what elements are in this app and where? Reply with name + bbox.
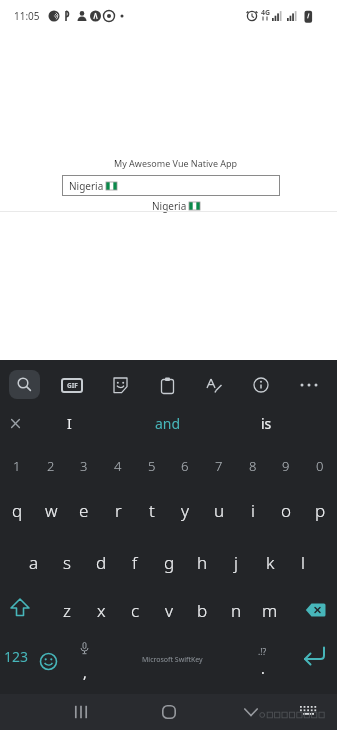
button[interactable]: e: [67, 487, 101, 533]
button[interactable]: p: [303, 487, 337, 533]
button[interactable]: I: [29, 404, 109, 442]
staticText: t: [149, 499, 155, 522]
staticText: a: [29, 551, 39, 574]
staticText: r: [115, 499, 122, 522]
staticText: e: [79, 499, 89, 522]
button[interactable]: 7: [202, 446, 236, 486]
button[interactable]: m: [253, 587, 287, 633]
staticText: 4G: [261, 8, 271, 18]
button[interactable]: x: [84, 587, 118, 633]
button[interactable]: [59, 694, 103, 730]
staticText: n: [231, 599, 242, 622]
button[interactable]: l: [286, 539, 320, 585]
staticText: k: [266, 551, 275, 574]
button[interactable]: q: [0, 487, 34, 533]
button[interactable]: 3: [67, 446, 101, 486]
button[interactable]: [292, 630, 334, 682]
staticText: 2: [47, 457, 55, 475]
button[interactable]: 8: [236, 446, 270, 486]
staticText: u: [214, 499, 225, 522]
button[interactable]: c: [118, 587, 152, 633]
button[interactable]: v: [152, 587, 186, 633]
button[interactable]: [103, 368, 137, 402]
button[interactable]: and: [123, 404, 213, 442]
button[interactable]: t: [135, 487, 169, 533]
button[interactable]: [31, 636, 65, 686]
button[interactable]: 2: [34, 446, 68, 486]
button[interactable]: 123: [0, 631, 33, 681]
button[interactable]: k: [253, 539, 287, 585]
button[interactable]: .!?: [245, 635, 279, 689]
button[interactable]: d: [84, 539, 118, 585]
button[interactable]: 1: [0, 446, 34, 486]
staticText: 11:05: [14, 9, 40, 23]
button[interactable]: [150, 368, 184, 402]
staticText: c: [131, 599, 140, 622]
button[interactable]: ,: [67, 635, 101, 689]
button[interactable]: n: [219, 587, 253, 633]
button[interactable]: j: [219, 539, 253, 585]
staticText: 7: [215, 457, 223, 475]
staticText: j: [234, 551, 238, 574]
staticText: Microsoft SwiftKey: [142, 655, 203, 665]
staticText: l: [301, 551, 305, 574]
staticText: 6: [181, 457, 189, 475]
button[interactable]: z: [50, 587, 84, 633]
staticText: Nigeria: [152, 199, 189, 213]
staticText: My Awesome Vue Native App: [114, 157, 238, 169]
button[interactable]: a: [17, 539, 51, 585]
staticText: I: [67, 414, 72, 433]
button[interactable]: Nigeria: [62, 175, 280, 196]
button[interactable]: Microsoft SwiftKey: [107, 635, 237, 685]
staticText: h: [197, 551, 208, 574]
button[interactable]: [9, 370, 40, 399]
staticText: 3: [80, 457, 88, 475]
button[interactable]: is: [226, 404, 306, 442]
button[interactable]: b: [185, 587, 219, 633]
button[interactable]: GIF: [55, 368, 89, 402]
button[interactable]: h: [185, 539, 219, 585]
button[interactable]: [244, 368, 278, 402]
button[interactable]: 4: [101, 446, 135, 486]
button[interactable]: f: [118, 539, 152, 585]
button[interactable]: o: [269, 487, 303, 533]
staticText: 4: [114, 457, 122, 475]
staticText: GIF: [67, 381, 78, 390]
staticText: ,: [83, 663, 87, 682]
staticText: .!?: [258, 646, 267, 658]
button[interactable]: r: [101, 487, 135, 533]
button[interactable]: y: [168, 487, 202, 533]
staticText: 0: [316, 457, 324, 475]
staticText: 8: [249, 457, 257, 475]
button[interactable]: [147, 694, 191, 730]
button[interactable]: u: [202, 487, 236, 533]
button[interactable]: 6: [168, 446, 202, 486]
button[interactable]: w: [34, 487, 68, 533]
staticText: 123: [4, 647, 29, 666]
staticText: z: [63, 599, 71, 622]
button[interactable]: 9: [269, 446, 303, 486]
staticText: o: [281, 499, 292, 522]
button[interactable]: [1, 406, 29, 440]
button[interactable]: s: [50, 539, 84, 585]
button[interactable]: 5: [135, 446, 169, 486]
staticText: 5: [148, 457, 156, 475]
button[interactable]: g: [152, 539, 186, 585]
staticText: .: [261, 659, 265, 678]
button[interactable]: [294, 587, 336, 633]
staticText: w: [45, 499, 58, 522]
staticText: y: [181, 499, 189, 522]
staticText: b: [197, 599, 208, 622]
staticText: v: [165, 599, 173, 622]
staticText: f: [132, 551, 138, 574]
staticText: Nigeria: [69, 179, 106, 193]
button[interactable]: i: [236, 487, 270, 533]
staticText: 9: [282, 457, 290, 475]
button[interactable]: [197, 368, 231, 402]
button[interactable]: [292, 368, 326, 402]
button[interactable]: [229, 694, 273, 730]
staticText: d: [96, 551, 107, 574]
staticText: i: [251, 499, 255, 522]
button[interactable]: [0, 584, 40, 630]
button[interactable]: 0: [303, 446, 337, 486]
